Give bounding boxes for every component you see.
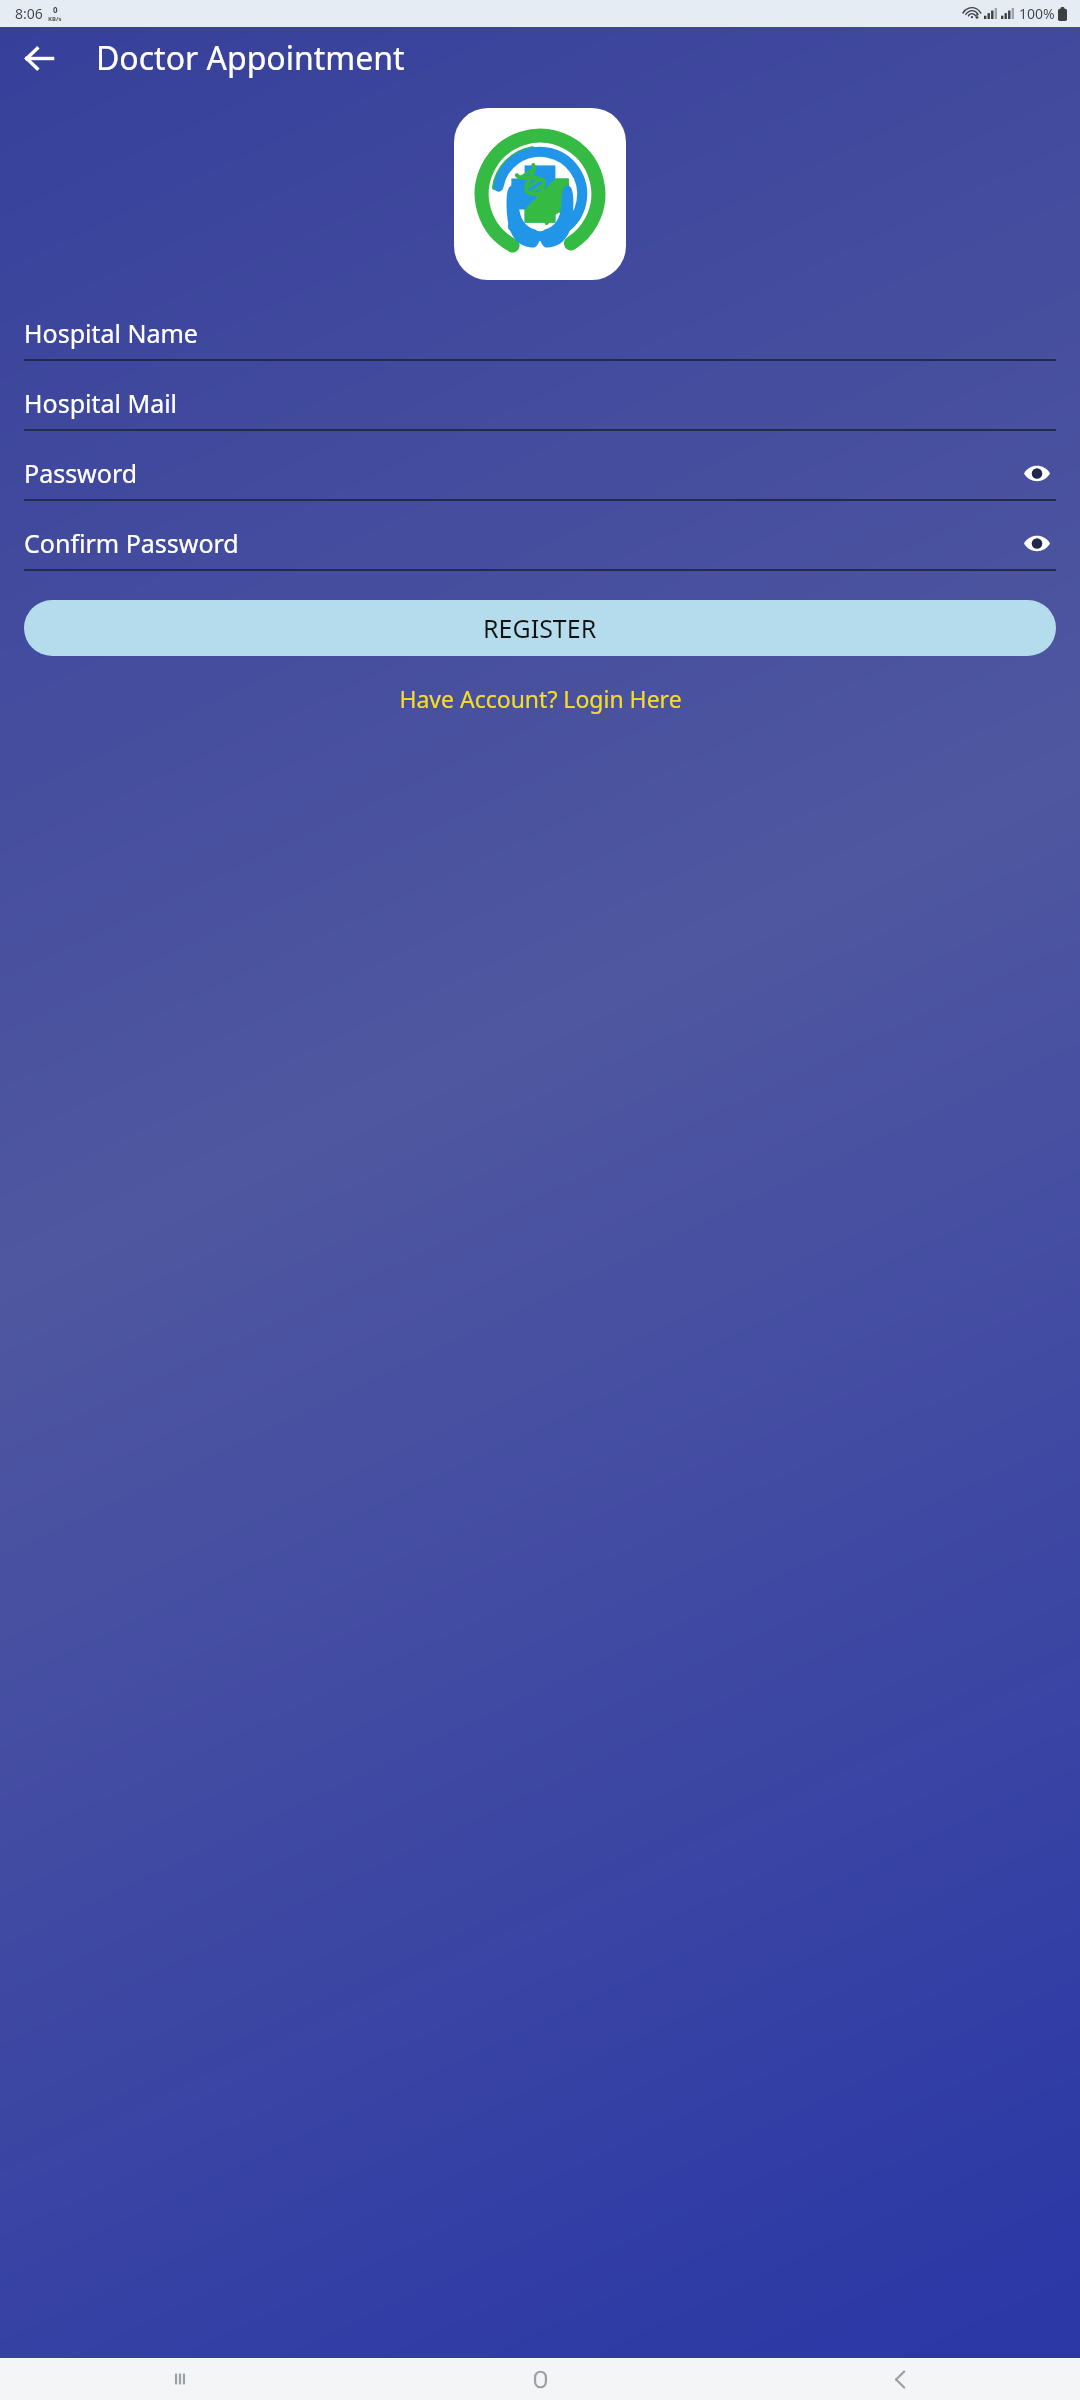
- staticText: 8:06: [15, 4, 43, 23]
- button[interactable]: Back: [14, 33, 64, 83]
- staticText: Confirm Password: [24, 526, 239, 560]
- button[interactable]: Show password: [1018, 454, 1056, 492]
- staticText: Password: [24, 456, 138, 490]
- button[interactable]: Show password: [1018, 524, 1056, 562]
- button[interactable]: Password: [24, 453, 1056, 501]
- staticText: Hospital Mail: [24, 386, 178, 420]
- button[interactable]: Recent apps: [0, 2358, 360, 2400]
- button[interactable]: Hospital Mail: [24, 383, 1056, 431]
- button[interactable]: Have Account? Login Here: [24, 679, 1056, 718]
- button[interactable]: Back: [720, 2358, 1080, 2400]
- button[interactable]: Hospital Name: [24, 313, 1056, 361]
- staticText: Hospital Name: [24, 316, 198, 350]
- button[interactable]: Confirm Password: [24, 523, 1056, 571]
- button[interactable]: REGISTER: [24, 600, 1056, 656]
- staticText: REGISTER: [483, 611, 597, 645]
- staticText: Have Account? Login Here: [399, 683, 682, 714]
- staticText: KB/s: [48, 15, 62, 23]
- button[interactable]: Home: [360, 2358, 720, 2400]
- staticText: Doctor Appointment: [96, 36, 405, 80]
- staticText: 0: [53, 4, 58, 15]
- staticText: 100%: [1019, 4, 1055, 23]
